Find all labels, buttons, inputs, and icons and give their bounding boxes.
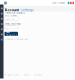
staticText: jane@mail.co	[5, 23, 17, 30]
staticText: Jane Doe	[5, 17, 14, 20]
staticText: Full name	[4, 14, 16, 17]
staticText: settings	[21, 8, 34, 12]
button[interactable]: Profile	[2, 0, 8, 6]
staticText: Save changes	[6, 30, 17, 38]
staticText: Email address	[4, 22, 20, 26]
staticText: Personal details	[4, 11, 24, 15]
staticText: Account	[4, 7, 19, 12]
button[interactable]: Save changes	[4, 32, 18, 36]
staticText: © 2024 Acme · Terms · Privacy	[4, 73, 41, 76]
staticText: user name	[52, 1, 66, 5]
button[interactable]: Apps	[68, 0, 74, 6]
staticText: Updated a moment ago	[4, 37, 27, 40]
